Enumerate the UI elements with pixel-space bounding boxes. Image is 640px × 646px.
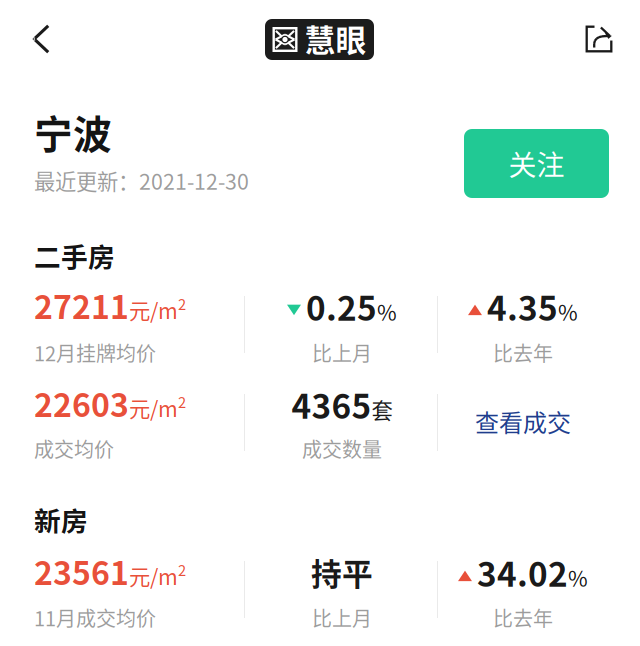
button[interactable]: Share — [561, 1, 637, 77]
staticText: 2 — [178, 391, 186, 412]
staticText: 查看成交 — [475, 404, 571, 439]
staticText: 套 — [371, 394, 392, 425]
staticText: 2 — [178, 293, 186, 314]
staticText: 2 — [178, 559, 186, 580]
staticText: 比去年 — [493, 338, 553, 367]
staticText: % — [558, 296, 578, 327]
staticText: 慧眼 — [304, 16, 366, 61]
button[interactable]: 关注 — [464, 129, 609, 198]
staticText: 0.25 — [306, 282, 377, 330]
staticText: 元/m — [129, 392, 178, 423]
staticText: 27211 — [34, 282, 129, 328]
staticText: % — [377, 296, 397, 327]
staticText: 比上月 — [312, 338, 372, 367]
staticText: 关注 — [508, 143, 564, 184]
button[interactable]: Back — [3, 1, 79, 77]
staticText: 元/m — [129, 560, 178, 591]
staticText: 比去年 — [493, 603, 553, 632]
staticText: 23561 — [34, 548, 129, 594]
staticText: 最近更新：2021-12-30 — [34, 165, 249, 196]
staticText: % — [568, 562, 588, 593]
staticText: 二手房 — [34, 236, 115, 275]
staticText: 4365 — [291, 380, 371, 428]
staticText: 宁波 — [34, 104, 112, 160]
staticText: 22603 — [34, 380, 129, 426]
staticText: 成交数量 — [302, 434, 382, 463]
staticText: 持平 — [311, 550, 373, 594]
button[interactable]: 查看成交 — [475, 404, 571, 439]
staticText: 比上月 — [312, 603, 372, 632]
staticText: 成交均价 — [34, 434, 114, 463]
staticText: 元/m — [129, 294, 178, 325]
staticText: 4.35 — [487, 282, 558, 330]
staticText: 新房 — [34, 500, 88, 539]
staticText: 12月挂牌均价 — [34, 338, 156, 367]
staticText: 11月成交均价 — [34, 603, 156, 632]
staticText: 34.02 — [477, 548, 568, 596]
